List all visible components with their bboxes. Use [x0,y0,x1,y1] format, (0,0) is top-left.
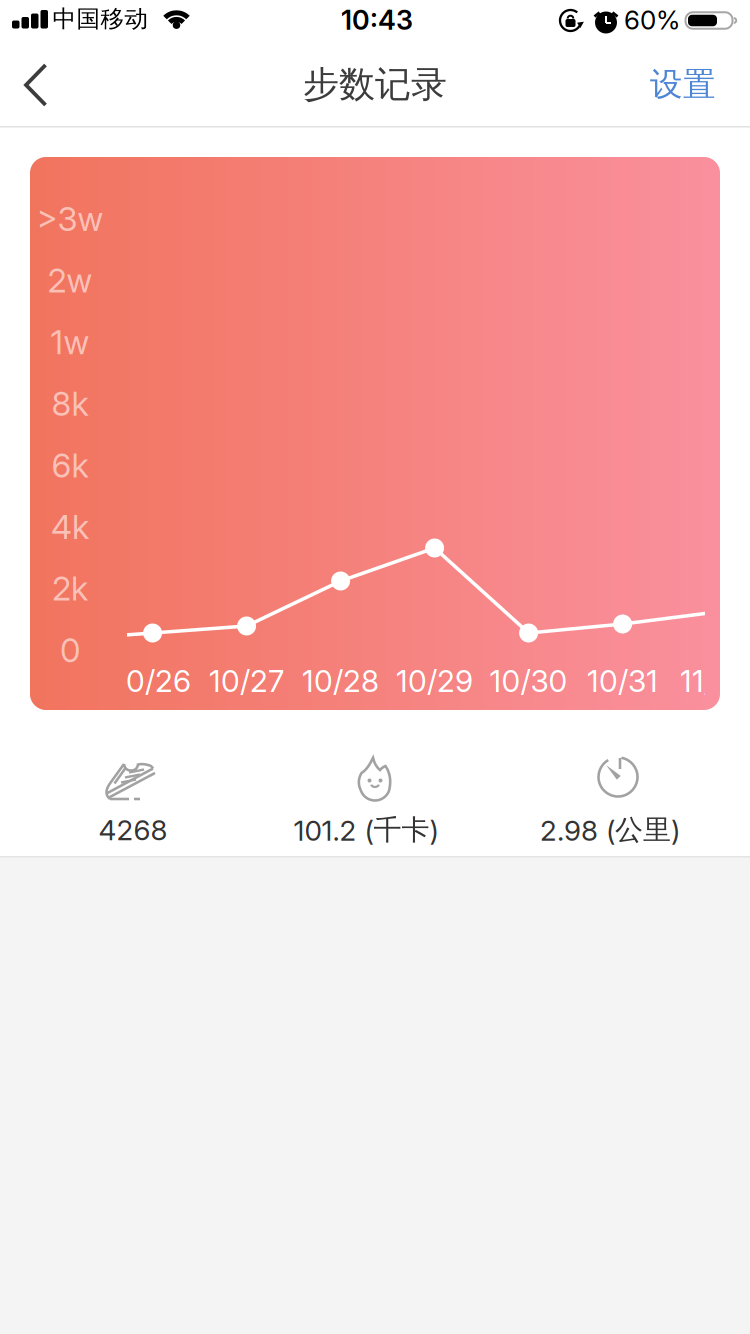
staticText: 步数记录 [303,62,447,107]
staticText: 10/28 [302,663,379,699]
staticText: 4k [51,507,89,547]
staticText: 1w [50,322,89,362]
staticText: 6k [51,445,88,485]
staticText: 中国移动 [52,4,148,34]
staticText: >3w [36,199,103,239]
staticText: 2k [52,569,88,608]
staticText: 2.98 (公里) [540,812,680,848]
button[interactable]: Back [6,52,66,116]
staticText: 4268 [98,813,167,847]
staticText: 10/31 [587,663,658,699]
staticText: 设置 [650,64,716,105]
staticText: 101.2 (千卡) [293,812,438,848]
staticText: 0 [60,630,80,670]
button[interactable]: 设置 [633,52,733,116]
staticText: 10/26 [114,663,191,699]
staticText: 2w [47,261,92,300]
staticText: 60% [624,4,680,36]
staticText: 10/30 [490,663,568,699]
staticText: 10/29 [396,663,473,699]
staticText: 11/1 [680,663,726,699]
staticText: 8k [51,384,88,424]
staticText: 10/27 [209,663,284,699]
staticText: 10:43 [341,4,413,36]
